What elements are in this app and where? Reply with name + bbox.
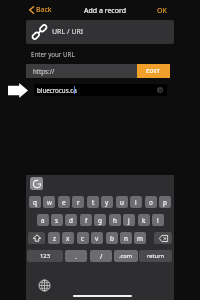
staticText: Add a record: [84, 6, 126, 16]
staticText: https://: [33, 67, 55, 75]
button[interactable]: 123: [27, 250, 63, 262]
staticText: r: [77, 198, 80, 207]
staticText: y: [105, 198, 109, 207]
button[interactable]: Switch keyboard: [39, 280, 50, 291]
button[interactable]: Google search: [30, 177, 43, 190]
button[interactable]: v: [91, 232, 103, 244]
button[interactable]: h: [109, 214, 121, 226]
staticText: 123: [40, 252, 50, 260]
button[interactable]: b: [106, 232, 118, 244]
staticText: a: [41, 216, 45, 225]
staticText: v: [95, 234, 99, 243]
button[interactable]: bluecrocus.ca: [34, 84, 167, 96]
staticText: b: [110, 234, 114, 243]
button[interactable]: /: [90, 250, 112, 262]
staticText: h: [113, 216, 117, 225]
button[interactable]: j: [123, 214, 135, 226]
button[interactable]: r: [72, 196, 84, 208]
staticText: EDIT: [146, 67, 161, 75]
staticText: k: [142, 216, 146, 225]
staticText: o: [149, 198, 153, 207]
button[interactable]: q: [29, 196, 41, 208]
button[interactable]: o: [145, 196, 157, 208]
staticText: d: [69, 216, 73, 225]
button[interactable]: a: [37, 214, 49, 226]
staticText: p: [163, 198, 167, 207]
button[interactable]: z: [48, 232, 60, 244]
button[interactable]: OK: [157, 6, 167, 16]
button[interactable]: k: [138, 214, 150, 226]
staticText: j: [128, 216, 130, 225]
button[interactable]: c: [77, 232, 89, 244]
button[interactable]: w: [43, 196, 55, 208]
button[interactable]: Back: [29, 5, 52, 15]
staticText: n: [124, 234, 128, 243]
button[interactable]: .: [65, 250, 87, 262]
button[interactable]: EDIT: [137, 64, 170, 78]
button[interactable]: d: [65, 214, 77, 226]
staticText: c: [81, 234, 85, 243]
button[interactable]: u: [116, 196, 128, 208]
button[interactable]: Clear text: [157, 87, 163, 93]
staticText: l: [157, 216, 159, 225]
staticText: g: [98, 216, 102, 225]
button[interactable]: URL / URI: [26, 20, 174, 44]
staticText: z: [53, 234, 56, 243]
button[interactable]: f: [80, 214, 92, 226]
staticText: q: [33, 198, 37, 207]
button[interactable]: x: [62, 232, 74, 244]
button[interactable]: g: [94, 214, 106, 226]
staticText: /: [100, 252, 103, 261]
staticText: return: [147, 252, 165, 260]
staticText: w: [47, 198, 52, 207]
staticText: .com: [119, 252, 133, 260]
staticText: f: [85, 216, 88, 225]
staticText: x: [66, 234, 70, 243]
staticText: u: [120, 198, 124, 207]
staticText: m: [137, 234, 143, 243]
staticText: s: [55, 216, 59, 225]
staticText: bluecrocus.ca: [37, 86, 77, 94]
button[interactable]: Shift: [28, 232, 45, 244]
button[interactable]: n: [120, 232, 132, 244]
button[interactable]: https://: [26, 64, 137, 78]
button[interactable]: y: [101, 196, 113, 208]
button[interactable]: Backspace: [154, 232, 172, 244]
button[interactable]: p: [159, 196, 171, 208]
button[interactable]: t: [87, 196, 99, 208]
staticText: .: [75, 252, 77, 261]
button[interactable]: s: [51, 214, 63, 226]
staticText: i: [135, 198, 137, 207]
button[interactable]: return: [139, 250, 172, 262]
button[interactable]: l: [152, 214, 164, 226]
button[interactable]: .com: [114, 250, 138, 262]
staticText: Enter your URL: [31, 50, 75, 58]
button[interactable]: m: [134, 232, 146, 244]
staticText: e: [62, 198, 66, 207]
staticText: t: [92, 198, 95, 207]
staticText: URL / URI: [52, 27, 84, 37]
button[interactable]: i: [130, 196, 142, 208]
staticText: Back: [36, 5, 52, 15]
button[interactable]: e: [58, 196, 70, 208]
